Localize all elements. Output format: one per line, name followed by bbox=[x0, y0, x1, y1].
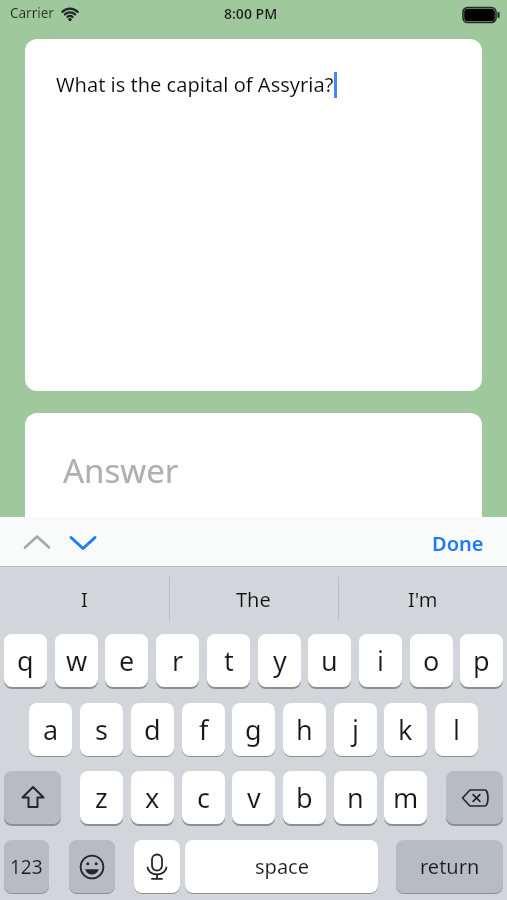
staticText: z bbox=[95, 779, 108, 816]
button[interactable] bbox=[134, 840, 180, 893]
button[interactable] bbox=[22, 532, 52, 552]
staticText: v bbox=[247, 779, 261, 816]
button[interactable]: b bbox=[283, 771, 326, 824]
button[interactable]: w bbox=[55, 634, 98, 687]
button[interactable] bbox=[69, 840, 115, 893]
staticText: e bbox=[119, 642, 135, 679]
button[interactable]: c bbox=[182, 771, 225, 824]
button[interactable]: g bbox=[232, 703, 275, 756]
staticText: p bbox=[473, 642, 490, 679]
staticText: 123 bbox=[10, 854, 43, 880]
button[interactable] bbox=[68, 533, 98, 553]
button[interactable]: d bbox=[131, 703, 174, 756]
button[interactable]: m bbox=[384, 771, 427, 824]
staticText: I bbox=[81, 586, 88, 613]
button[interactable]: The bbox=[169, 567, 338, 631]
staticText: I'm bbox=[408, 586, 438, 613]
staticText: q bbox=[17, 642, 34, 679]
staticText: w bbox=[66, 642, 88, 679]
button[interactable]: What is the capital of Assyria? bbox=[25, 39, 482, 391]
button[interactable] bbox=[446, 771, 503, 824]
button[interactable] bbox=[4, 771, 61, 824]
staticText: Done bbox=[432, 530, 484, 557]
button[interactable]: I'm bbox=[338, 567, 507, 631]
staticText: s bbox=[95, 711, 108, 748]
staticText: t bbox=[224, 642, 234, 679]
button[interactable]: f bbox=[182, 703, 225, 756]
staticText: c bbox=[197, 779, 210, 816]
staticText: What is the capital of Assyria? bbox=[56, 71, 334, 98]
button[interactable]: y bbox=[258, 634, 301, 687]
staticText: m bbox=[393, 779, 419, 816]
button[interactable]: n bbox=[334, 771, 377, 824]
staticText: y bbox=[273, 642, 287, 679]
staticText: d bbox=[144, 711, 161, 748]
staticText: space bbox=[255, 853, 309, 880]
button[interactable]: o bbox=[410, 634, 453, 687]
button[interactable]: 123 bbox=[4, 840, 49, 893]
button[interactable]: v bbox=[232, 771, 275, 824]
staticText: return bbox=[420, 853, 480, 880]
staticText: g bbox=[245, 711, 262, 748]
staticText: 8:00 PM bbox=[224, 4, 278, 23]
button[interactable]: h bbox=[283, 703, 326, 756]
staticText: Carrier bbox=[10, 4, 54, 22]
button[interactable]: I bbox=[0, 567, 169, 631]
staticText: i bbox=[377, 642, 384, 679]
button[interactable]: j bbox=[334, 703, 377, 756]
button[interactable]: u bbox=[308, 634, 351, 687]
button[interactable]: p bbox=[460, 634, 503, 687]
staticText: n bbox=[347, 779, 364, 816]
staticText: b bbox=[296, 779, 313, 816]
button[interactable]: Done bbox=[425, 529, 491, 557]
button[interactable]: s bbox=[80, 703, 123, 756]
staticText: Answer bbox=[63, 448, 179, 493]
button[interactable]: Answer bbox=[25, 413, 482, 633]
staticText: l bbox=[453, 711, 460, 748]
staticText: r bbox=[172, 642, 184, 679]
button[interactable]: e bbox=[105, 634, 148, 687]
staticText: h bbox=[296, 711, 313, 748]
button[interactable]: return bbox=[396, 840, 503, 893]
button[interactable]: space bbox=[185, 840, 378, 893]
staticText: j bbox=[352, 711, 359, 748]
staticText: The bbox=[236, 586, 271, 613]
button[interactable]: q bbox=[4, 634, 47, 687]
staticText: o bbox=[423, 642, 440, 679]
staticText: k bbox=[398, 711, 413, 748]
button[interactable]: t bbox=[207, 634, 250, 687]
button[interactable]: i bbox=[359, 634, 402, 687]
staticText: u bbox=[321, 642, 338, 679]
staticText: x bbox=[145, 779, 160, 816]
button[interactable]: x bbox=[131, 771, 174, 824]
staticText: a bbox=[43, 711, 59, 748]
button[interactable]: r bbox=[156, 634, 199, 687]
button[interactable]: l bbox=[435, 703, 478, 756]
button[interactable]: z bbox=[80, 771, 123, 824]
button[interactable]: k bbox=[384, 703, 427, 756]
button[interactable]: a bbox=[29, 703, 72, 756]
staticText: f bbox=[199, 711, 209, 748]
